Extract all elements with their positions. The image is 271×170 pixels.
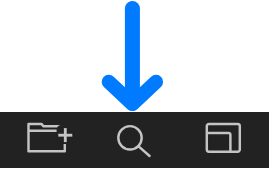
button[interactable]: Change layout bbox=[182, 112, 269, 168]
button[interactable]: Search bbox=[94, 112, 182, 168]
button[interactable]: New folder bbox=[0, 112, 94, 168]
